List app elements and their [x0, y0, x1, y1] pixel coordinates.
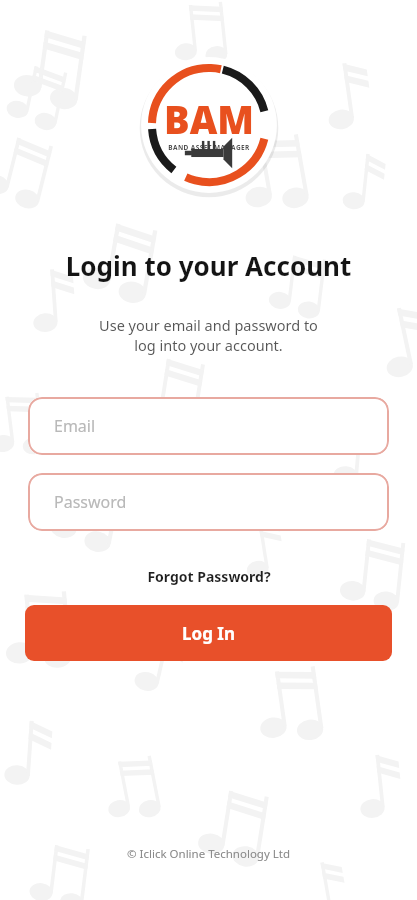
button[interactable]: Password: [28, 473, 389, 531]
staticText: Use your email and password to log into …: [0, 315, 417, 356]
staticText: BAM: [139, 93, 279, 145]
staticText: Login to your Account: [0, 248, 417, 283]
button[interactable]: Log In: [25, 605, 392, 661]
staticText: BAND ASSET MANAGER: [139, 143, 279, 152]
staticText: Email: [54, 415, 96, 437]
button[interactable]: Email: [28, 397, 389, 455]
button[interactable]: Forgot Password?: [147, 567, 271, 586]
staticText: Password: [54, 491, 127, 513]
staticText: Log In: [182, 622, 235, 645]
staticText: © Iclick Online Technology Ltd: [0, 846, 417, 862]
staticText: Forgot Password?: [147, 567, 271, 586]
